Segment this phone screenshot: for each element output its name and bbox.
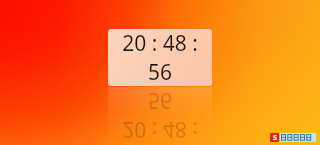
button[interactable]: Clock 20:48:56 (108, 29, 212, 86)
staticText: 20 : 48 : 56 (108, 29, 212, 86)
staticText: 20 : 48 : 56 (108, 87, 212, 144)
button[interactable]: Watermark (270, 132, 316, 142)
staticText: S (273, 133, 277, 142)
